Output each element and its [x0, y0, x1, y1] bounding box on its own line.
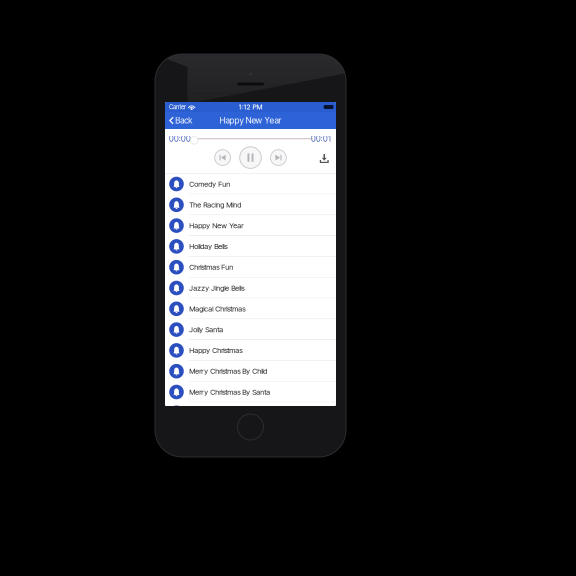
staticText: Merry Christmas By Santa	[189, 388, 270, 396]
button[interactable]: Silent Night	[165, 402, 336, 423]
button[interactable]: Merry Christmas By Santa	[165, 382, 336, 402]
button[interactable]: Jazzy Jingle Bells	[165, 278, 336, 298]
staticText: Christmas Fun	[189, 263, 233, 272]
staticText: Happy New Year	[219, 115, 281, 126]
staticText: 00:00	[169, 134, 191, 144]
button[interactable]: Next	[270, 150, 286, 165]
button[interactable]: Pause	[240, 147, 261, 168]
staticText: 1:12 PM	[238, 103, 262, 111]
button[interactable]: Download	[315, 150, 333, 167]
button[interactable]: Christmas Fun	[165, 257, 336, 278]
staticText: Carrier	[169, 103, 186, 111]
staticText: Merry Christmas By Child	[189, 367, 267, 376]
staticText: Happy New Year	[189, 221, 243, 230]
staticText: Happy Christmas	[189, 346, 242, 355]
button[interactable]: The Racing Mind	[165, 194, 336, 215]
button[interactable]: Merry Christmas By Child	[165, 361, 336, 382]
staticText: Holiday Bells	[189, 242, 227, 251]
staticText: The Racing Mind	[189, 200, 241, 209]
staticText: Magical Christmas	[189, 304, 245, 313]
staticText: Jazzy Jingle Bells	[189, 284, 244, 292]
staticText: Jolly Santa	[189, 325, 223, 334]
button[interactable]: Happy New Year	[165, 215, 336, 236]
button[interactable]: Holiday Bells	[165, 236, 336, 257]
button[interactable]: Jolly Santa	[165, 319, 336, 340]
staticText: 00:01	[311, 134, 331, 144]
button[interactable]: Magical Christmas	[165, 298, 336, 319]
button[interactable]: Comedy Fun	[165, 174, 336, 194]
button[interactable]: Previous	[215, 150, 230, 165]
button[interactable]: Back	[165, 112, 198, 129]
staticText: Comedy Fun	[189, 180, 230, 188]
staticText: Back	[175, 115, 192, 125]
button[interactable]: Happy Christmas	[165, 340, 336, 361]
